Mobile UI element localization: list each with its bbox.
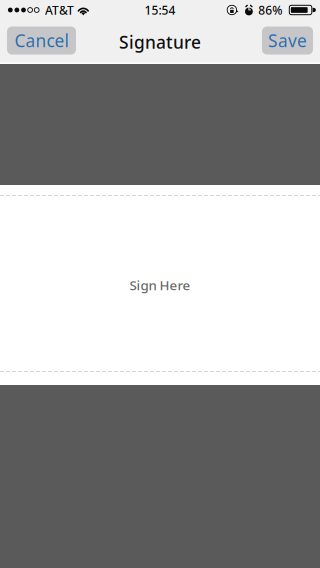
- staticText: Save: [268, 29, 307, 52]
- staticText: 15:54: [144, 2, 175, 18]
- button[interactable]: Save: [262, 28, 313, 56]
- button[interactable]: Cancel: [7, 28, 76, 56]
- staticText: Sign Here: [129, 276, 190, 294]
- staticText: AT&T: [45, 2, 74, 18]
- staticText: Signature: [119, 30, 201, 53]
- staticText: 86%: [258, 2, 282, 18]
- button[interactable]: Sign Here: [0, 185, 320, 385]
- staticText: Cancel: [14, 29, 68, 52]
